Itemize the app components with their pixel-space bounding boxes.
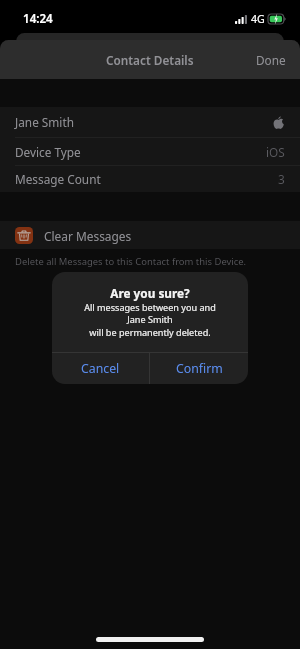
staticText: 3 <box>278 171 285 187</box>
staticText: iOS <box>266 144 285 160</box>
staticText: Message Count <box>15 171 101 187</box>
button[interactable]: Done <box>242 42 300 78</box>
staticText: Delete all Messages to this Contact from… <box>15 255 247 268</box>
staticText: 14:24 <box>23 11 53 27</box>
staticText: All messages between you and Jane Smith … <box>52 301 248 339</box>
staticText: Cancel <box>81 360 120 377</box>
staticText: Done <box>256 52 286 68</box>
staticText: Jane Smith <box>15 114 74 130</box>
staticText: Contact Details <box>106 52 194 68</box>
staticText: Device Type <box>15 144 81 160</box>
staticText: Clear Messages <box>44 228 132 244</box>
button[interactable]: Cancel <box>52 353 149 384</box>
staticText: Are you sure? <box>52 285 248 301</box>
staticText: 4G <box>251 12 265 26</box>
staticText: Confirm <box>176 360 223 377</box>
other: Clear Messages <box>15 227 33 244</box>
button[interactable]: Clear Messages <box>0 221 300 249</box>
button[interactable]: Confirm <box>150 353 248 384</box>
button[interactable]: Jane Smith <box>0 107 300 137</box>
button[interactable]: Message Count <box>0 166 300 192</box>
button[interactable]: Device Type <box>0 138 300 165</box>
